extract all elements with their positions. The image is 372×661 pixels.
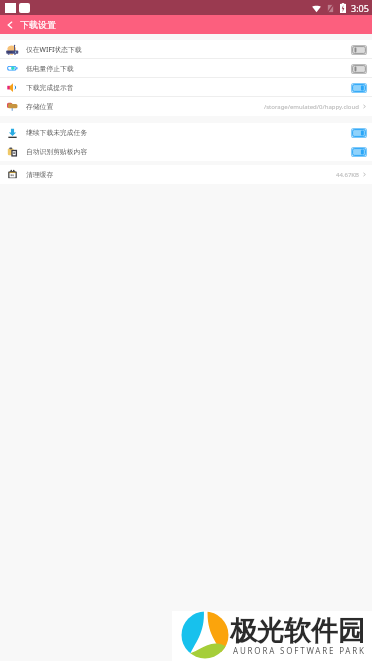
staticText: 仅在WIFI状态下载 xyxy=(26,45,82,54)
button[interactable]: 低电量停止下载 xyxy=(0,59,372,78)
button[interactable]: 清理缓存 xyxy=(0,165,372,184)
staticText: 继续下载未完成任务 xyxy=(26,128,88,137)
staticText: 清理缓存 xyxy=(26,170,54,179)
staticText: AURORA SOFTWARE PARK xyxy=(233,645,366,656)
staticText: 3:05 xyxy=(351,2,369,14)
button[interactable]: 存储位置 xyxy=(0,97,372,116)
button[interactable]: Off xyxy=(351,64,367,74)
button[interactable]: On xyxy=(351,128,367,138)
staticText: 低电量停止下载 xyxy=(26,64,74,73)
staticText: 下载完成提示音 xyxy=(26,83,74,92)
button[interactable]: Back xyxy=(0,15,60,34)
button[interactable]: 仅在WIFI状态下载 xyxy=(0,40,372,59)
staticText: /storage/emulated/0/happy.cloud xyxy=(264,103,359,111)
staticText: 存储位置 xyxy=(26,102,54,111)
button[interactable]: 下载完成提示音 xyxy=(0,78,372,97)
staticText: 极光软件园 xyxy=(230,614,365,648)
button[interactable]: On xyxy=(351,83,367,93)
button[interactable]: 自动识别剪贴板内容 xyxy=(0,142,372,161)
button[interactable]: On xyxy=(351,147,367,157)
other: Back xyxy=(6,21,14,29)
button[interactable]: Off xyxy=(351,45,367,55)
button[interactable]: 继续下载未完成任务 xyxy=(0,123,372,142)
staticText: 自动识别剪贴板内容 xyxy=(26,147,88,156)
staticText: 44.67KB xyxy=(336,171,359,179)
staticText: 下载设置 xyxy=(20,19,56,30)
